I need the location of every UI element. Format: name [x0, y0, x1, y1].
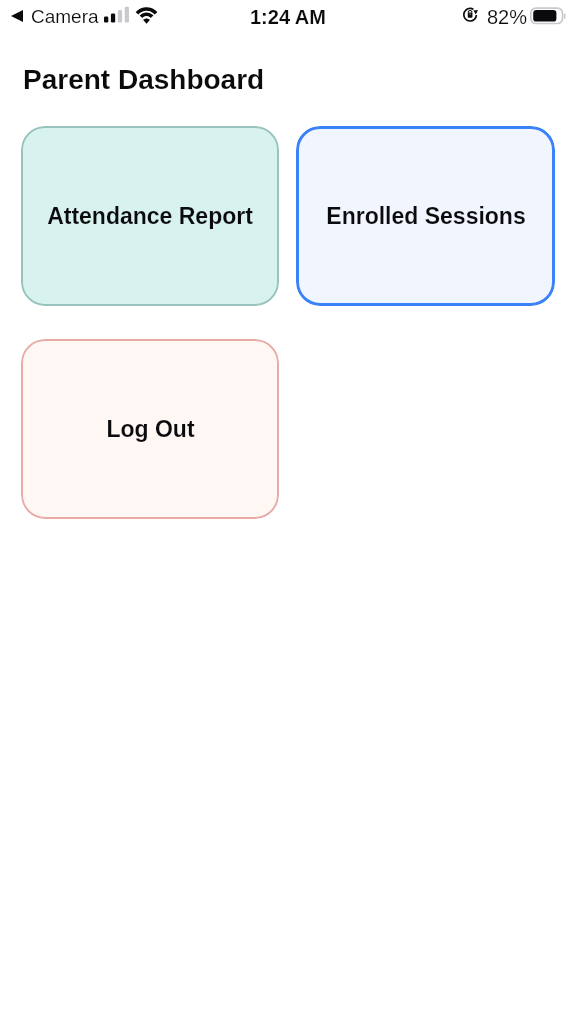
- other: Battery 82 percent: [530, 7, 568, 25]
- button[interactable]: Attendance Report: [21, 126, 279, 306]
- staticText: Attendance Report: [47, 203, 253, 229]
- button[interactable]: Log Out: [21, 339, 279, 519]
- staticText: Camera: [31, 6, 99, 27]
- staticText: 1:24 AM: [250, 6, 326, 28]
- other: Back to Camera: [11, 10, 23, 22]
- staticText: Parent Dashboard: [23, 64, 265, 95]
- button[interactable]: Enrolled Sessions: [296, 126, 555, 306]
- other: Rotation lock: [463, 6, 480, 22]
- other: Wi-Fi: [135, 6, 158, 25]
- staticText: Enrolled Sessions: [326, 203, 526, 229]
- staticText: Log Out: [106, 416, 195, 442]
- button[interactable]: Back to Camera: [11, 3, 99, 29]
- staticText: 82%: [487, 6, 528, 28]
- other: Cellular signal strength: [104, 7, 129, 24]
